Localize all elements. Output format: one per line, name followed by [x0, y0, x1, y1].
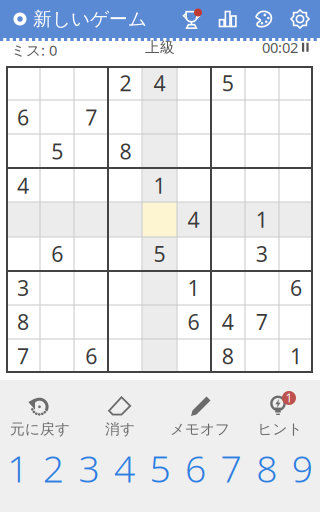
button[interactable]: Settings — [282, 0, 318, 38]
staticText: 5 — [222, 69, 234, 97]
staticText: 7 — [256, 308, 268, 336]
staticText: 6 — [85, 342, 97, 370]
staticText: 2 — [119, 69, 131, 97]
staticText: 2 — [43, 443, 64, 493]
button[interactable]: 6 — [178, 443, 213, 493]
staticText: 4 — [188, 205, 200, 234]
staticText: 3 — [256, 239, 268, 268]
button[interactable]: 元に戻す — [0, 395, 80, 437]
button[interactable]: Achievements — [174, 0, 210, 38]
staticText: 6 — [185, 443, 206, 493]
button[interactable]: 1 — [240, 395, 320, 437]
staticText: ヒント — [257, 420, 302, 438]
staticText: 消す — [105, 420, 135, 438]
staticText: 3 — [17, 274, 29, 302]
button[interactable]: 消す — [80, 395, 160, 437]
button[interactable]: 新しいゲーム — [0, 0, 155, 38]
staticText: 8 — [256, 443, 277, 493]
staticText: 4 — [114, 443, 135, 493]
button[interactable]: 8 — [249, 443, 284, 493]
staticText: 1 — [290, 342, 302, 370]
staticText: 1 — [153, 171, 165, 199]
staticText: ミス: 0 — [11, 40, 57, 60]
button[interactable]: Statistics — [210, 0, 246, 38]
staticText: 9 — [292, 443, 313, 493]
button[interactable]: 4 — [107, 443, 142, 493]
button[interactable]: 1 — [0, 443, 36, 493]
staticText: 元に戻す — [10, 420, 70, 438]
staticText: 8 — [222, 342, 234, 370]
staticText: 5 — [153, 239, 165, 268]
button[interactable]: 5 — [142, 443, 178, 493]
staticText: 1 — [188, 274, 200, 302]
button[interactable]: 3 — [71, 443, 107, 493]
staticText: 1 — [256, 205, 268, 234]
staticText: 5 — [51, 137, 63, 165]
staticText: 4 — [153, 69, 165, 97]
staticText: 4 — [222, 308, 234, 336]
staticText: 00:02 — [262, 37, 298, 57]
staticText: 8 — [17, 308, 29, 336]
staticText: 6 — [188, 308, 200, 336]
staticText: 7 — [221, 443, 242, 493]
button[interactable]: メモオフ — [160, 395, 240, 437]
staticText: 7 — [85, 103, 97, 131]
staticText: 3 — [78, 443, 99, 493]
staticText: 1 — [285, 390, 292, 406]
button[interactable]: 2 — [35, 443, 71, 493]
staticText: 6 — [51, 239, 63, 268]
staticText: 8 — [119, 137, 131, 165]
staticText: 7 — [17, 342, 29, 370]
staticText: 1 — [7, 443, 28, 493]
button[interactable]: 7 — [213, 443, 249, 493]
staticText: メモオフ — [170, 420, 230, 438]
button[interactable]: 9 — [284, 443, 320, 493]
staticText: 6 — [290, 274, 302, 302]
staticText: 4 — [17, 171, 29, 199]
button[interactable]: Theme — [246, 0, 282, 38]
staticText: 上級 — [145, 38, 175, 56]
staticText: 5 — [149, 443, 170, 493]
staticText: 新しいゲーム — [33, 7, 147, 30]
staticText: 6 — [17, 103, 29, 131]
